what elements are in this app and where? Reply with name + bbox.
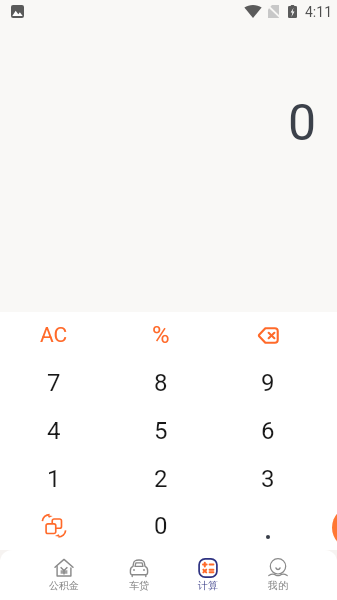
- button[interactable]: [214, 503, 321, 549]
- staticText: 8: [154, 369, 168, 397]
- staticText: 车贷: [129, 579, 149, 592]
- other: Switch: [43, 515, 65, 537]
- staticText: 4: [47, 417, 61, 445]
- button[interactable]: 9: [214, 359, 321, 407]
- button[interactable]: 0: [107, 503, 214, 549]
- button[interactable]: %: [107, 311, 214, 359]
- staticText: AC: [40, 323, 68, 348]
- button[interactable]: 2: [107, 455, 214, 503]
- button[interactable]: 6: [214, 407, 321, 455]
- staticText: 0: [154, 512, 168, 540]
- staticText: 6: [261, 417, 275, 445]
- button[interactable]: 3: [214, 455, 321, 503]
- button[interactable]: 车贷: [129, 550, 149, 600]
- button[interactable]: 1: [0, 455, 107, 503]
- button[interactable]: Switch: [0, 503, 107, 549]
- staticText: 0: [288, 94, 317, 153]
- staticText: %: [152, 321, 170, 349]
- button[interactable]: 计算: [198, 550, 218, 600]
- button[interactable]: Backspace: [214, 311, 321, 359]
- button[interactable]: 4: [0, 407, 107, 455]
- other: Backspace: [257, 327, 279, 344]
- button[interactable]: Equals: [332, 506, 337, 549]
- staticText: 5: [154, 417, 168, 445]
- staticText: 我的: [268, 579, 288, 592]
- button[interactable]: 我的: [268, 550, 288, 600]
- staticText: 1: [47, 465, 61, 493]
- staticText: 计算: [198, 579, 218, 592]
- staticText: 3: [261, 465, 275, 493]
- button[interactable]: 7: [0, 359, 107, 407]
- button[interactable]: 5: [107, 407, 214, 455]
- staticText: 2: [154, 465, 168, 493]
- staticText: 4:11: [305, 4, 332, 20]
- staticText: 7: [47, 369, 61, 397]
- button[interactable]: AC: [0, 311, 107, 359]
- staticText: 9: [261, 369, 275, 397]
- button[interactable]: 8: [107, 359, 214, 407]
- staticText: 公积金: [49, 579, 79, 592]
- button[interactable]: 公积金: [49, 550, 79, 600]
